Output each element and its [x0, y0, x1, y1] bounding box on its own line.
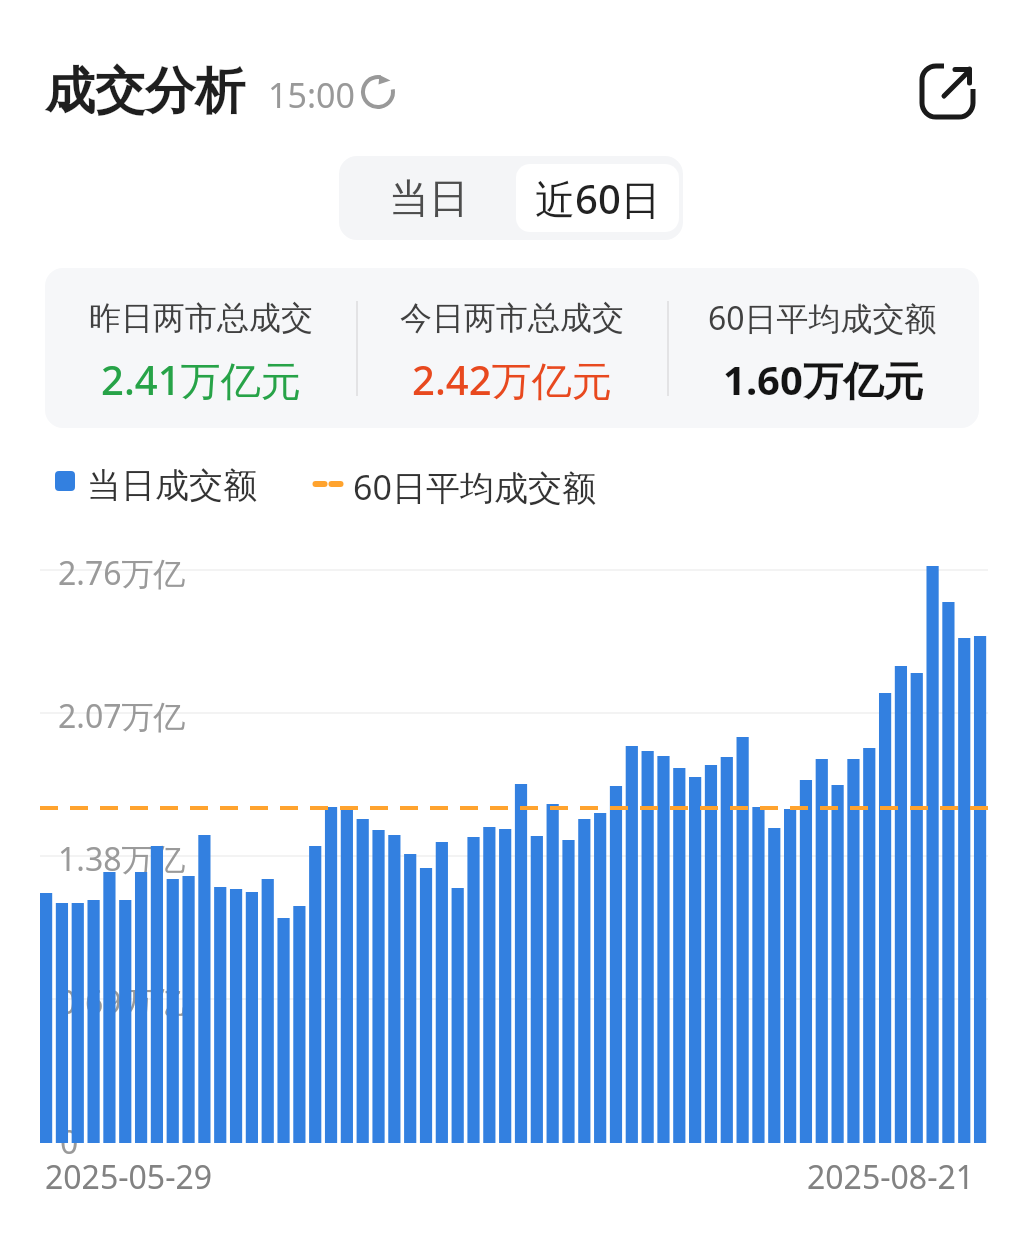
staticText: 当日成交额 [87, 464, 257, 507]
staticText: 15:00 [268, 72, 355, 118]
staticText: 近60日 [535, 171, 661, 226]
staticText: 今日两市总成交 [400, 298, 624, 338]
staticText: 60日平均成交额 [353, 464, 596, 510]
button[interactable]: 当日 [339, 156, 519, 240]
staticText: 2.41万亿元 [101, 352, 301, 404]
button[interactable]: 近60日 [516, 164, 679, 232]
staticText: 0 [60, 1120, 79, 1164]
staticText: 成交分析 [45, 60, 245, 123]
staticText: 1.38万亿 [58, 837, 186, 881]
staticText: 2.42万亿元 [412, 352, 612, 404]
button[interactable] [918, 60, 978, 120]
staticText: 60日平均成交额 [708, 296, 937, 340]
staticText: 当日 [389, 173, 469, 223]
staticText: 2025-05-29 [45, 1155, 213, 1199]
button[interactable] [361, 75, 395, 109]
staticText: 0.69万亿 [58, 980, 186, 1024]
staticText: 1.60万亿元 [723, 352, 923, 404]
staticText: 2025-08-21 [807, 1155, 975, 1195]
staticText: 2.76万亿 [58, 551, 186, 595]
staticText: 2.07万亿 [58, 694, 186, 738]
staticText: 昨日两市总成交 [89, 298, 313, 338]
